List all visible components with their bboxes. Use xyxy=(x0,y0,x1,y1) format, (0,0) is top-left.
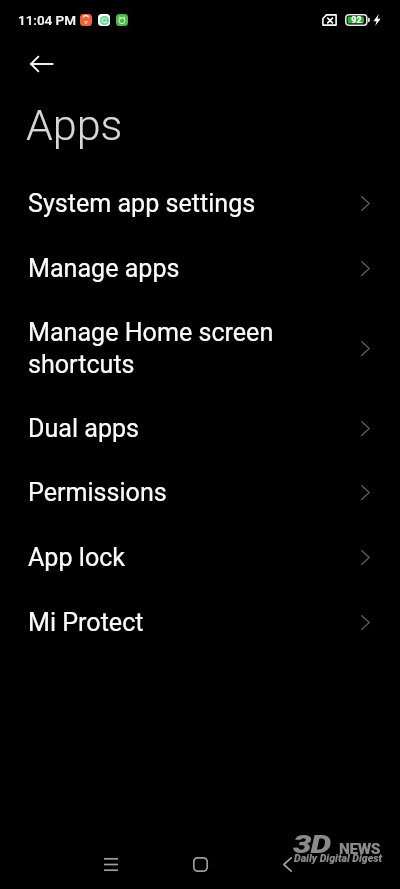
button[interactable]: Back xyxy=(19,42,63,86)
staticText: 92 xyxy=(351,15,362,26)
staticText: Manage Home screen shortcuts xyxy=(28,318,274,379)
button[interactable]: Manage Home screen shortcuts xyxy=(0,300,400,396)
staticText: Daily Digital Digest xyxy=(294,852,383,864)
button[interactable]: Recent apps xyxy=(92,845,130,883)
button[interactable]: Home xyxy=(181,845,219,883)
staticText: 3D xyxy=(293,829,331,859)
button[interactable]: System app settings xyxy=(0,171,400,236)
staticText: NEWS xyxy=(339,840,381,858)
staticText: Permissions xyxy=(28,478,167,507)
staticText: Dual apps xyxy=(28,414,140,443)
staticText: Manage apps xyxy=(28,254,180,283)
staticText: Mi Protect xyxy=(28,608,144,637)
staticText: App lock xyxy=(28,543,126,572)
button[interactable]: App lock xyxy=(0,525,400,590)
button[interactable]: Permissions xyxy=(0,460,400,525)
button[interactable]: Mi Protect xyxy=(0,590,400,655)
staticText: 11:04 PM xyxy=(18,12,77,28)
button[interactable]: Dual apps xyxy=(0,396,400,460)
button[interactable]: Back xyxy=(268,845,306,883)
staticText: Apps xyxy=(26,100,123,150)
staticText: System app settings xyxy=(28,189,256,218)
button[interactable]: Manage apps xyxy=(0,236,400,300)
